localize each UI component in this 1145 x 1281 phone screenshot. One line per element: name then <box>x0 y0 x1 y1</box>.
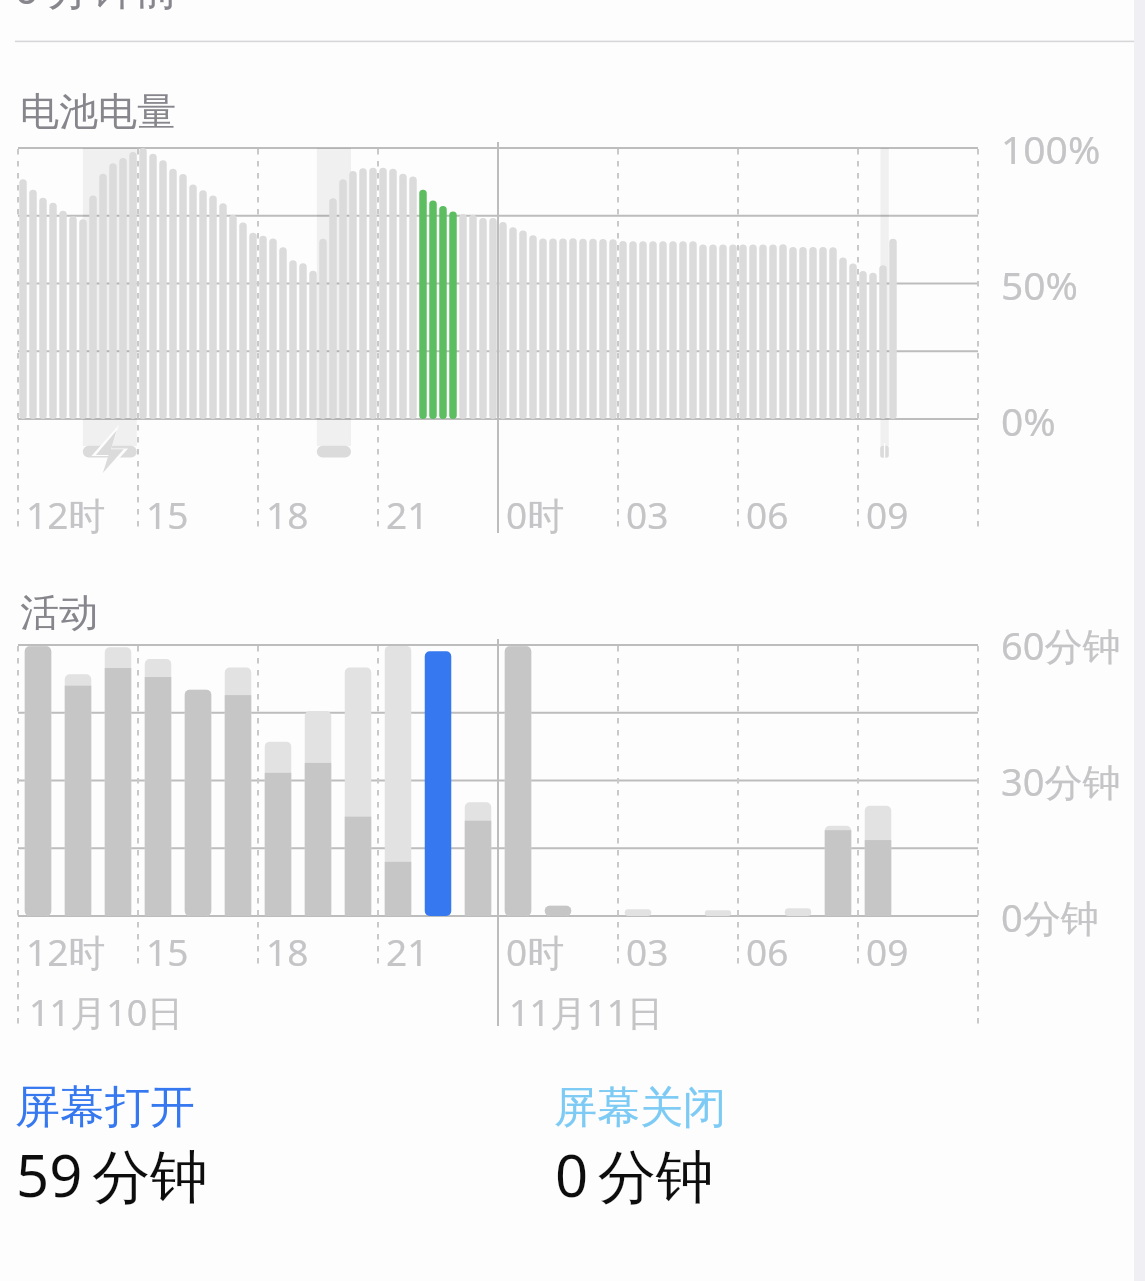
staticText: 18 <box>266 926 309 976</box>
staticText: 0分钟 <box>1001 891 1099 943</box>
staticText: 12时 <box>26 926 106 977</box>
staticText: 屏幕打开 <box>15 1079 195 1136</box>
staticText: 03 <box>626 489 669 539</box>
staticText: 03 <box>626 926 669 976</box>
staticText: 09 <box>866 926 909 976</box>
staticText: 11月10日 <box>29 988 184 1037</box>
staticText: 60分钟 <box>1001 619 1121 671</box>
staticText: 0时 <box>506 489 565 540</box>
staticText: 0 分钟前 <box>14 0 179 17</box>
staticText: 屏幕关闭 <box>554 1081 726 1135</box>
staticText: 30分钟 <box>1001 755 1121 807</box>
staticText: 电池电量 <box>20 87 176 136</box>
staticText: 21 <box>386 926 429 976</box>
staticText: 50% <box>1001 258 1079 311</box>
staticText: 活动 <box>20 588 98 637</box>
staticText: 09 <box>866 489 909 539</box>
staticText: 0时 <box>506 926 565 977</box>
staticText: 100% <box>1001 122 1101 175</box>
staticText: 06 <box>746 489 789 539</box>
staticText: 18 <box>266 489 309 539</box>
staticText: 11月11日 <box>509 988 664 1037</box>
staticText: 21 <box>386 489 429 539</box>
staticText: 15 <box>146 489 189 539</box>
staticText: 59 分钟 <box>16 1135 208 1214</box>
staticText: 0 分钟 <box>555 1135 714 1214</box>
staticText: 06 <box>746 926 789 976</box>
button[interactable]: 0 分钟前 <box>0 0 1145 1281</box>
staticText: 15 <box>146 926 189 976</box>
staticText: 0% <box>1001 394 1056 447</box>
staticText: 12时 <box>26 489 106 540</box>
